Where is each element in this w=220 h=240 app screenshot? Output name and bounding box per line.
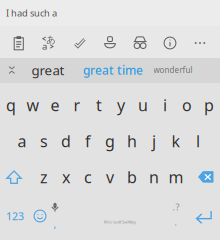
staticText: o (182, 94, 192, 116)
button[interactable]: w (22, 88, 44, 122)
button[interactable]: z (33, 160, 55, 194)
button[interactable]: Return (190, 199, 218, 235)
button[interactable]: v (99, 160, 121, 194)
staticText: . (174, 216, 177, 228)
staticText: , (53, 217, 56, 231)
button[interactable]: x (55, 160, 77, 194)
button[interactable]: p (198, 88, 220, 122)
staticText: w (26, 94, 39, 116)
button[interactable]: Info (156, 29, 184, 57)
button[interactable]: n (143, 160, 165, 194)
staticText: m (168, 166, 183, 188)
button[interactable]: j (143, 124, 165, 158)
button[interactable]: k (165, 124, 187, 158)
button[interactable]: e (44, 88, 66, 122)
button[interactable]: a (11, 124, 33, 158)
staticText: h (127, 130, 137, 152)
button[interactable]: s (33, 124, 55, 158)
button[interactable]: h (121, 124, 143, 158)
staticText: a (42, 40, 47, 52)
staticText: i (163, 94, 167, 116)
staticText: g (105, 130, 115, 152)
button[interactable]: great (23, 57, 73, 82)
staticText: n (149, 166, 159, 188)
staticText: d (61, 130, 71, 152)
button[interactable]: b (121, 160, 143, 194)
staticText: I had such a (6, 7, 57, 19)
staticText: great (31, 61, 64, 79)
button[interactable]: y (110, 88, 132, 122)
button[interactable]: Shift (0, 160, 28, 194)
staticText: r (73, 94, 80, 116)
button[interactable]: Emoji (28, 198, 52, 234)
button[interactable]: l (187, 124, 209, 158)
staticText: a (17, 130, 26, 152)
button[interactable]: 123 (2, 198, 28, 234)
staticText: .? (172, 201, 179, 213)
button[interactable]: Translate (34, 29, 62, 57)
button[interactable]: great time (80, 57, 146, 82)
button[interactable]: More (186, 29, 214, 57)
button[interactable]: c (77, 160, 99, 194)
button[interactable]: q (0, 88, 22, 122)
staticText: l (196, 130, 200, 152)
staticText: s (40, 130, 48, 152)
staticText: あ (46, 34, 56, 45)
button[interactable]: Backspace (192, 160, 220, 194)
button[interactable]: t (88, 88, 110, 122)
button[interactable]: Voice input (43, 196, 67, 232)
staticText: t (96, 94, 102, 116)
button[interactable]: u (132, 88, 154, 122)
button[interactable]: wonderful (149, 57, 197, 82)
button[interactable]: Microsoft SwiftKey (78, 204, 162, 240)
staticText: y (117, 94, 125, 116)
button[interactable]: Proofread (66, 29, 94, 57)
staticText: p (204, 94, 214, 116)
staticText: q (6, 94, 16, 116)
button[interactable]: Incognito mode (126, 29, 154, 57)
staticText: v (106, 166, 114, 188)
button[interactable]: Account (96, 29, 124, 57)
button[interactable]: d (55, 124, 77, 158)
staticText: Microsoft SwiftKey (104, 219, 136, 225)
button[interactable]: g (99, 124, 121, 158)
button[interactable]: m (165, 160, 187, 194)
staticText: 123 (6, 209, 24, 223)
staticText: j (152, 130, 156, 152)
staticText: z (40, 166, 48, 188)
staticText: u (138, 94, 148, 116)
button[interactable]: i (154, 88, 176, 122)
staticText: e (50, 94, 59, 116)
staticText: great time (83, 62, 143, 78)
button[interactable]: f (77, 124, 99, 158)
button[interactable]: Collapse suggestions (2, 57, 22, 82)
staticText: f (85, 130, 91, 152)
staticText: k (171, 130, 180, 152)
button[interactable]: r (66, 88, 88, 122)
staticText: b (127, 166, 137, 188)
button[interactable]: Clipboard (5, 29, 33, 57)
staticText: wonderful (153, 65, 192, 75)
button[interactable]: Punctuation (164, 196, 188, 232)
staticText: x (62, 166, 70, 188)
button[interactable]: o (176, 88, 198, 122)
staticText: c (84, 166, 92, 188)
